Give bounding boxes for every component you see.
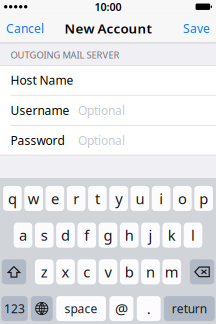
button[interactable]: x bbox=[56, 259, 75, 284]
staticText: d bbox=[61, 225, 70, 245]
staticText: r bbox=[73, 189, 79, 208]
button[interactable]: n bbox=[141, 259, 160, 284]
staticText: m bbox=[165, 262, 179, 282]
staticText: h bbox=[125, 225, 134, 245]
button[interactable]: Save bbox=[177, 13, 216, 43]
button[interactable]: @ bbox=[109, 296, 133, 321]
staticText: c bbox=[83, 262, 90, 282]
button[interactable]: u bbox=[131, 186, 149, 211]
staticText: o bbox=[178, 189, 187, 208]
staticText: i bbox=[159, 189, 163, 208]
button[interactable]: w bbox=[24, 186, 43, 211]
button[interactable]: . bbox=[137, 296, 161, 321]
button[interactable]: a bbox=[14, 223, 32, 248]
button[interactable]: h bbox=[120, 223, 139, 248]
staticText: k bbox=[168, 225, 176, 245]
button[interactable]: l bbox=[184, 223, 202, 248]
staticText: space bbox=[65, 301, 98, 316]
staticText: Save bbox=[183, 20, 210, 36]
staticText: . bbox=[147, 299, 151, 318]
button[interactable]: Password bbox=[0, 126, 216, 155]
staticText: e bbox=[51, 189, 59, 208]
staticText: Password bbox=[10, 132, 64, 148]
button[interactable]: m bbox=[162, 259, 181, 284]
staticText: Cancel bbox=[6, 20, 44, 36]
staticText: a bbox=[19, 225, 27, 245]
staticText: return bbox=[172, 301, 207, 316]
button[interactable]: i bbox=[152, 186, 170, 211]
staticText: Username bbox=[10, 102, 69, 118]
staticText: OUTGOING MAIL SERVER bbox=[10, 49, 119, 61]
button[interactable]: f bbox=[77, 223, 96, 248]
button[interactable]: o bbox=[173, 186, 192, 211]
button[interactable]: space bbox=[56, 296, 106, 321]
staticText: s bbox=[41, 225, 48, 245]
staticText: p bbox=[199, 189, 208, 208]
button[interactable]: d bbox=[56, 223, 75, 248]
button[interactable]: r bbox=[67, 186, 85, 211]
button[interactable]: c bbox=[77, 259, 96, 284]
staticText: x bbox=[61, 262, 69, 282]
button[interactable]: b bbox=[120, 259, 139, 284]
staticText: l bbox=[191, 225, 195, 245]
button[interactable]: p bbox=[194, 186, 213, 211]
button[interactable]: y bbox=[109, 186, 128, 211]
staticText: u bbox=[135, 189, 144, 208]
button[interactable]: Next keyboard bbox=[31, 296, 53, 321]
button[interactable]: j bbox=[141, 223, 160, 248]
staticText: 123 bbox=[4, 301, 25, 316]
staticText: t bbox=[95, 189, 100, 208]
button[interactable]: 123 bbox=[1, 296, 28, 321]
button[interactable]: q bbox=[3, 186, 22, 211]
staticText: n bbox=[146, 262, 155, 282]
staticText: z bbox=[41, 262, 48, 282]
button[interactable]: k bbox=[162, 223, 181, 248]
staticText: Optional bbox=[78, 102, 125, 118]
staticText: Optional bbox=[78, 132, 125, 148]
button[interactable]: Cancel bbox=[0, 13, 50, 43]
button[interactable]: Shift bbox=[2, 259, 26, 284]
button[interactable]: Delete bbox=[190, 259, 214, 284]
button[interactable]: z bbox=[35, 259, 54, 284]
button[interactable]: s bbox=[35, 223, 54, 248]
staticText: 10:00 bbox=[94, 0, 121, 14]
staticText: f bbox=[84, 225, 89, 245]
staticText: g bbox=[103, 225, 112, 245]
button[interactable]: g bbox=[99, 223, 117, 248]
button[interactable]: t bbox=[88, 186, 107, 211]
staticText: b bbox=[125, 262, 134, 282]
staticText: v bbox=[104, 262, 111, 282]
staticText: Host Name bbox=[10, 72, 73, 88]
staticText: @ bbox=[115, 299, 128, 318]
staticText: q bbox=[8, 189, 17, 208]
button[interactable]: v bbox=[99, 259, 117, 284]
staticText: y bbox=[115, 189, 122, 208]
button[interactable]: Host Name bbox=[0, 65, 216, 95]
button[interactable]: e bbox=[46, 186, 64, 211]
button[interactable]: Username bbox=[0, 95, 216, 125]
staticText: New Account bbox=[64, 19, 151, 37]
staticText: j bbox=[148, 225, 152, 245]
button[interactable]: return bbox=[164, 296, 215, 321]
staticText: w bbox=[28, 189, 40, 208]
